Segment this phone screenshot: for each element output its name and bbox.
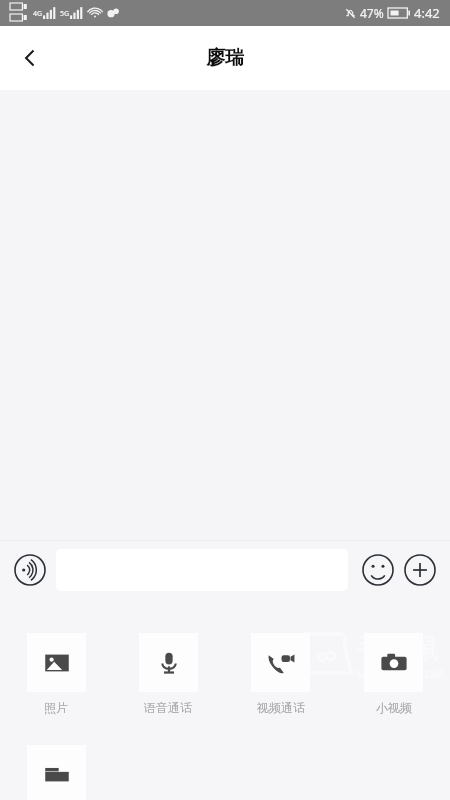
staticText: SHOUJISHU.COM <box>356 666 444 681</box>
staticText: 小视频 <box>376 700 412 715</box>
staticText: 视频通话 <box>257 700 305 715</box>
button[interactable]: 照片 <box>0 633 112 715</box>
staticText: 4G <box>33 9 43 19</box>
button[interactable]: 视频通话 <box>224 633 337 715</box>
button[interactable]: More <box>400 550 440 590</box>
button[interactable] <box>0 745 112 800</box>
staticText: 5G <box>60 9 70 19</box>
staticText: 语音通话 <box>144 700 192 715</box>
button[interactable]: 语音通话 <box>112 633 224 715</box>
staticText: 廖瑞 <box>206 46 244 70</box>
staticText: 47% <box>360 5 384 21</box>
staticText: 照片 <box>44 700 68 715</box>
staticText: 4:42 <box>414 4 440 22</box>
button[interactable]: Back <box>6 34 54 82</box>
button[interactable]: Voice input <box>10 550 50 590</box>
staticText: 手机鼠 <box>356 631 440 666</box>
button[interactable]: Emoji <box>358 550 398 590</box>
button[interactable]: 小视频 <box>337 633 450 715</box>
